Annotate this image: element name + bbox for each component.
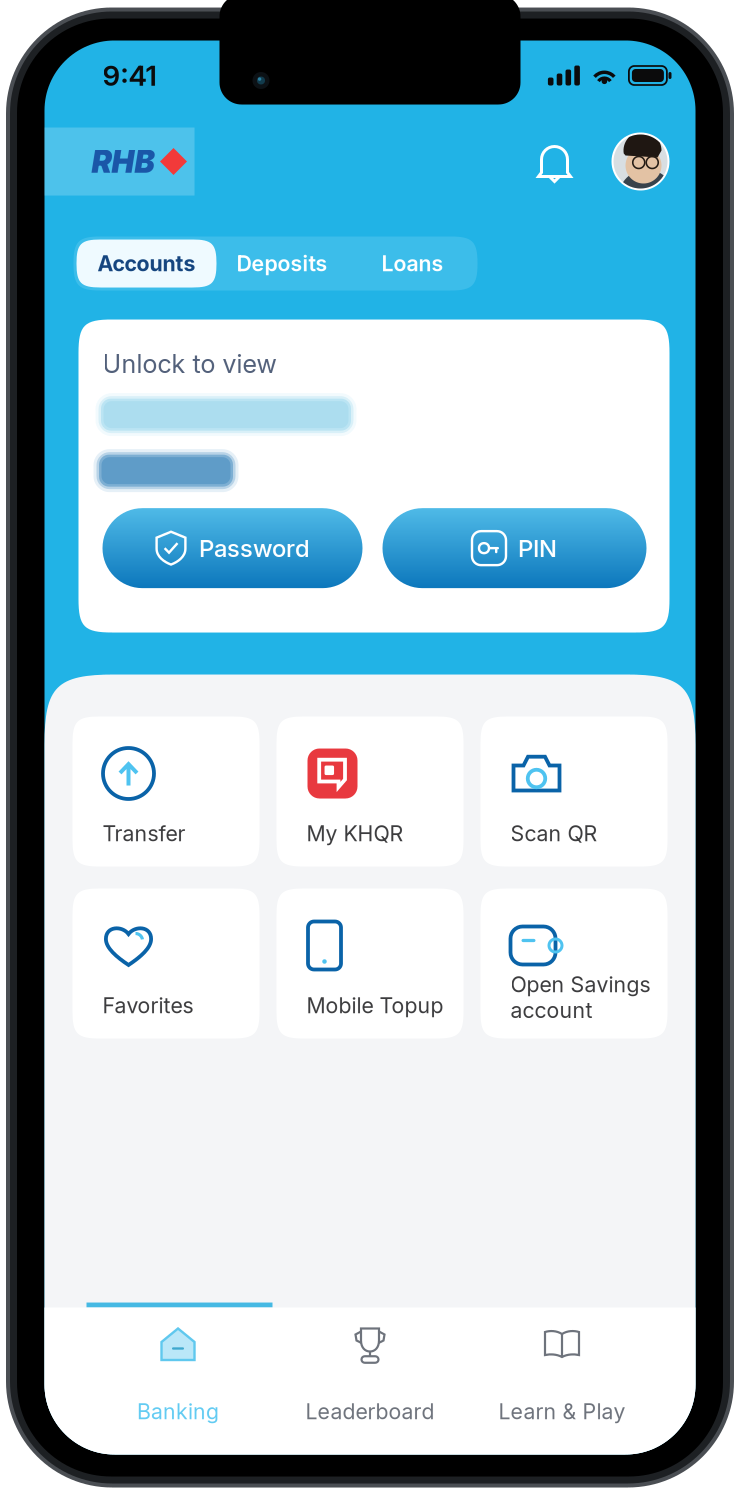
staticText: Banking [137, 1399, 219, 1424]
button[interactable]: Scan QR [480, 716, 667, 866]
staticText: Favorites [102, 993, 193, 1018]
button[interactable]: Accounts [76, 239, 216, 287]
staticText: Open Savings account [510, 971, 650, 1023]
staticText: Mobile Topup [306, 993, 443, 1018]
button[interactable]: Password [102, 508, 362, 588]
staticText: RHB [91, 143, 154, 180]
button[interactable]: Notifications [524, 132, 584, 190]
staticText: Learn & Play [498, 1399, 625, 1424]
button[interactable]: Mobile Topup [276, 888, 463, 1038]
button[interactable]: Deposits [216, 236, 347, 290]
staticText: My KHQR [306, 821, 403, 846]
button[interactable]: Favorites [72, 888, 259, 1038]
button[interactable]: PIN [382, 508, 646, 588]
staticText: Loans [381, 251, 443, 276]
staticText: PIN [518, 534, 557, 563]
staticText: Unlock to view [102, 348, 276, 379]
button[interactable]: Profile [611, 132, 669, 190]
button[interactable]: Loans [347, 236, 477, 290]
button[interactable]: Transfer [72, 716, 259, 866]
button[interactable]: My KHQR [276, 716, 463, 866]
staticText: 9:41 [102, 59, 156, 92]
staticText: Transfer [102, 821, 185, 846]
staticText: Deposits [236, 251, 327, 276]
staticText: Scan QR [510, 821, 597, 846]
button[interactable]: Banking [82, 1307, 274, 1454]
button[interactable]: Learn & Play [466, 1307, 658, 1454]
staticText: Accounts [97, 251, 195, 276]
staticText: Leaderboard [305, 1399, 434, 1424]
staticText: Password [199, 534, 310, 563]
button[interactable]: Leaderboard [274, 1307, 466, 1454]
button[interactable]: Open Savings account [480, 888, 667, 1038]
